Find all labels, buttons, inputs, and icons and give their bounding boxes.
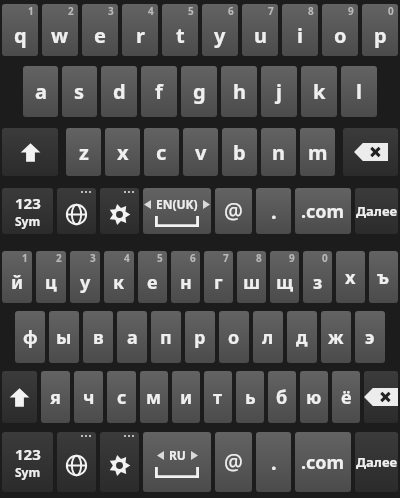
button[interactable]: @ — [215, 188, 252, 234]
button[interactable]: m — [300, 128, 335, 176]
button[interactable]: 8 — [237, 251, 266, 303]
button[interactable]: Далее — [355, 432, 398, 492]
staticText: o — [334, 22, 347, 49]
button[interactable]: 2 — [42, 4, 78, 56]
button[interactable]: z — [66, 128, 101, 176]
button[interactable]: a — [23, 66, 58, 117]
button[interactable]: в — [83, 311, 113, 363]
button[interactable]: 3 — [70, 251, 100, 303]
button[interactable]: ж — [321, 311, 351, 363]
button[interactable]: d — [101, 66, 137, 117]
button[interactable]: Symbols — [2, 432, 53, 492]
button[interactable]: д — [287, 311, 317, 363]
button[interactable]: j — [261, 66, 297, 117]
button[interactable]: n — [261, 128, 296, 176]
button[interactable]: c — [144, 128, 179, 176]
button[interactable]: Далее — [355, 188, 398, 234]
button[interactable]: .com — [295, 188, 351, 234]
button[interactable]: а — [117, 311, 147, 363]
button[interactable]: s — [62, 66, 97, 117]
button[interactable]: f — [141, 66, 177, 117]
button[interactable]: 3 — [82, 4, 118, 56]
staticText: 6 — [190, 251, 196, 265]
button[interactable]: Backspace — [343, 128, 398, 176]
button[interactable]: б — [268, 371, 296, 423]
button[interactable]: Symbols — [2, 188, 53, 234]
button[interactable]: р — [185, 311, 215, 363]
button[interactable]: 8 — [282, 4, 318, 56]
button[interactable]: 9 — [270, 251, 299, 303]
button[interactable]: h — [221, 66, 257, 117]
button[interactable]: с — [107, 371, 136, 423]
button[interactable]: ё — [332, 371, 360, 423]
staticText: ь — [245, 385, 256, 410]
staticText: ш — [243, 270, 261, 295]
button[interactable]: 2 — [36, 251, 66, 303]
button[interactable]: Switch language — [57, 432, 96, 492]
button[interactable]: Backspace — [364, 371, 398, 423]
button[interactable]: т — [204, 371, 232, 423]
button[interactable]: ч — [74, 371, 103, 423]
button[interactable]: 4 — [122, 4, 158, 56]
button[interactable]: x — [105, 128, 140, 176]
staticText: 0 — [388, 4, 394, 18]
staticText: о — [228, 325, 240, 350]
button[interactable]: ф — [15, 311, 45, 363]
button[interactable]: . — [256, 188, 291, 234]
button[interactable]: Space — [143, 432, 211, 492]
staticText: з — [313, 270, 323, 295]
button[interactable]: л — [253, 311, 283, 363]
button[interactable]: Settings — [100, 188, 139, 234]
button[interactable]: l — [341, 66, 377, 117]
staticText: г — [214, 270, 223, 295]
button[interactable]: о — [219, 311, 249, 363]
button[interactable]: ы — [49, 311, 79, 363]
button[interactable]: k — [301, 66, 337, 117]
staticText: 9 — [348, 4, 354, 18]
staticText: 8 — [256, 251, 262, 265]
button[interactable]: 5 — [138, 251, 167, 303]
button[interactable]: ъ — [369, 251, 398, 303]
button[interactable]: х — [336, 251, 365, 303]
staticText: 3 — [90, 251, 96, 265]
button[interactable]: . — [256, 432, 291, 492]
button[interactable]: 6 — [202, 4, 238, 56]
button[interactable]: 5 — [162, 4, 198, 56]
button[interactable]: 4 — [104, 251, 134, 303]
staticText: к — [113, 270, 125, 295]
button[interactable]: g — [181, 66, 217, 117]
button[interactable]: э — [355, 311, 385, 363]
staticText: с — [117, 385, 127, 410]
staticText: .com — [301, 199, 345, 224]
button[interactable]: 7 — [242, 4, 278, 56]
button[interactable]: 6 — [171, 251, 200, 303]
button[interactable]: 0 — [303, 251, 332, 303]
staticText: ё — [341, 385, 352, 410]
button[interactable]: 1 — [2, 251, 32, 303]
button[interactable]: м — [140, 371, 168, 423]
button[interactable]: 1 — [2, 4, 38, 56]
button[interactable]: @ — [215, 432, 252, 492]
button[interactable]: я — [41, 371, 70, 423]
button[interactable]: 9 — [322, 4, 358, 56]
button[interactable]: v — [183, 128, 218, 176]
button[interactable]: Shift — [2, 128, 58, 176]
button[interactable]: ю — [300, 371, 328, 423]
button[interactable]: 7 — [204, 251, 233, 303]
staticText: y — [214, 22, 226, 49]
button[interactable]: Space — [143, 188, 211, 234]
staticText: 2 — [56, 251, 62, 265]
button[interactable]: Settings — [100, 432, 139, 492]
button[interactable]: Shift — [2, 371, 37, 423]
staticText: и — [180, 385, 193, 410]
button[interactable]: 0 — [362, 4, 398, 56]
staticText: р — [194, 325, 206, 350]
button[interactable]: b — [222, 128, 257, 176]
button[interactable]: и — [172, 371, 200, 423]
button[interactable]: Switch language — [57, 188, 96, 234]
button[interactable]: .com — [295, 432, 351, 492]
staticText: ю — [306, 385, 322, 410]
button[interactable]: п — [151, 311, 181, 363]
staticText: n — [272, 139, 285, 166]
button[interactable]: ь — [236, 371, 264, 423]
